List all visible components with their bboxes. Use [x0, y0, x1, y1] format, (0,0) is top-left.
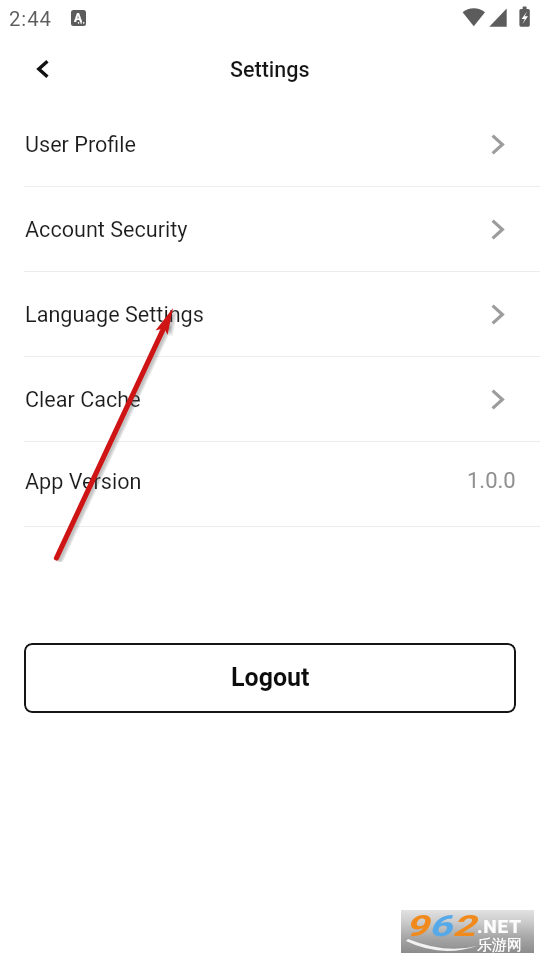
button[interactable]: Account Security: [0, 187, 540, 271]
staticText: A: [74, 11, 83, 25]
staticText: 1.0.0: [467, 468, 516, 494]
staticText: .NET: [477, 915, 522, 937]
staticText: Logout: [231, 663, 310, 692]
staticText: App Version: [25, 469, 142, 494]
button[interactable]: App Version: [0, 442, 540, 526]
staticText: 2:44: [9, 7, 52, 31]
staticText: 6: [428, 909, 452, 943]
staticText: 2: [452, 909, 475, 943]
staticText: User Profile: [25, 132, 136, 157]
staticText: Account Security: [25, 217, 188, 242]
staticText: 乐游网: [477, 936, 522, 955]
staticText: Clear Cache: [25, 387, 141, 412]
button[interactable]: Back: [17, 43, 68, 94]
other: Input method: [71, 10, 86, 26]
staticText: Language Settings: [25, 302, 204, 327]
button[interactable]: User Profile: [0, 102, 540, 186]
staticText: 9: [405, 909, 428, 943]
button[interactable]: Language Settings: [0, 272, 540, 356]
button[interactable]: Logout: [24, 643, 516, 713]
staticText: Settings: [230, 57, 310, 82]
button[interactable]: Clear Cache: [0, 357, 540, 441]
